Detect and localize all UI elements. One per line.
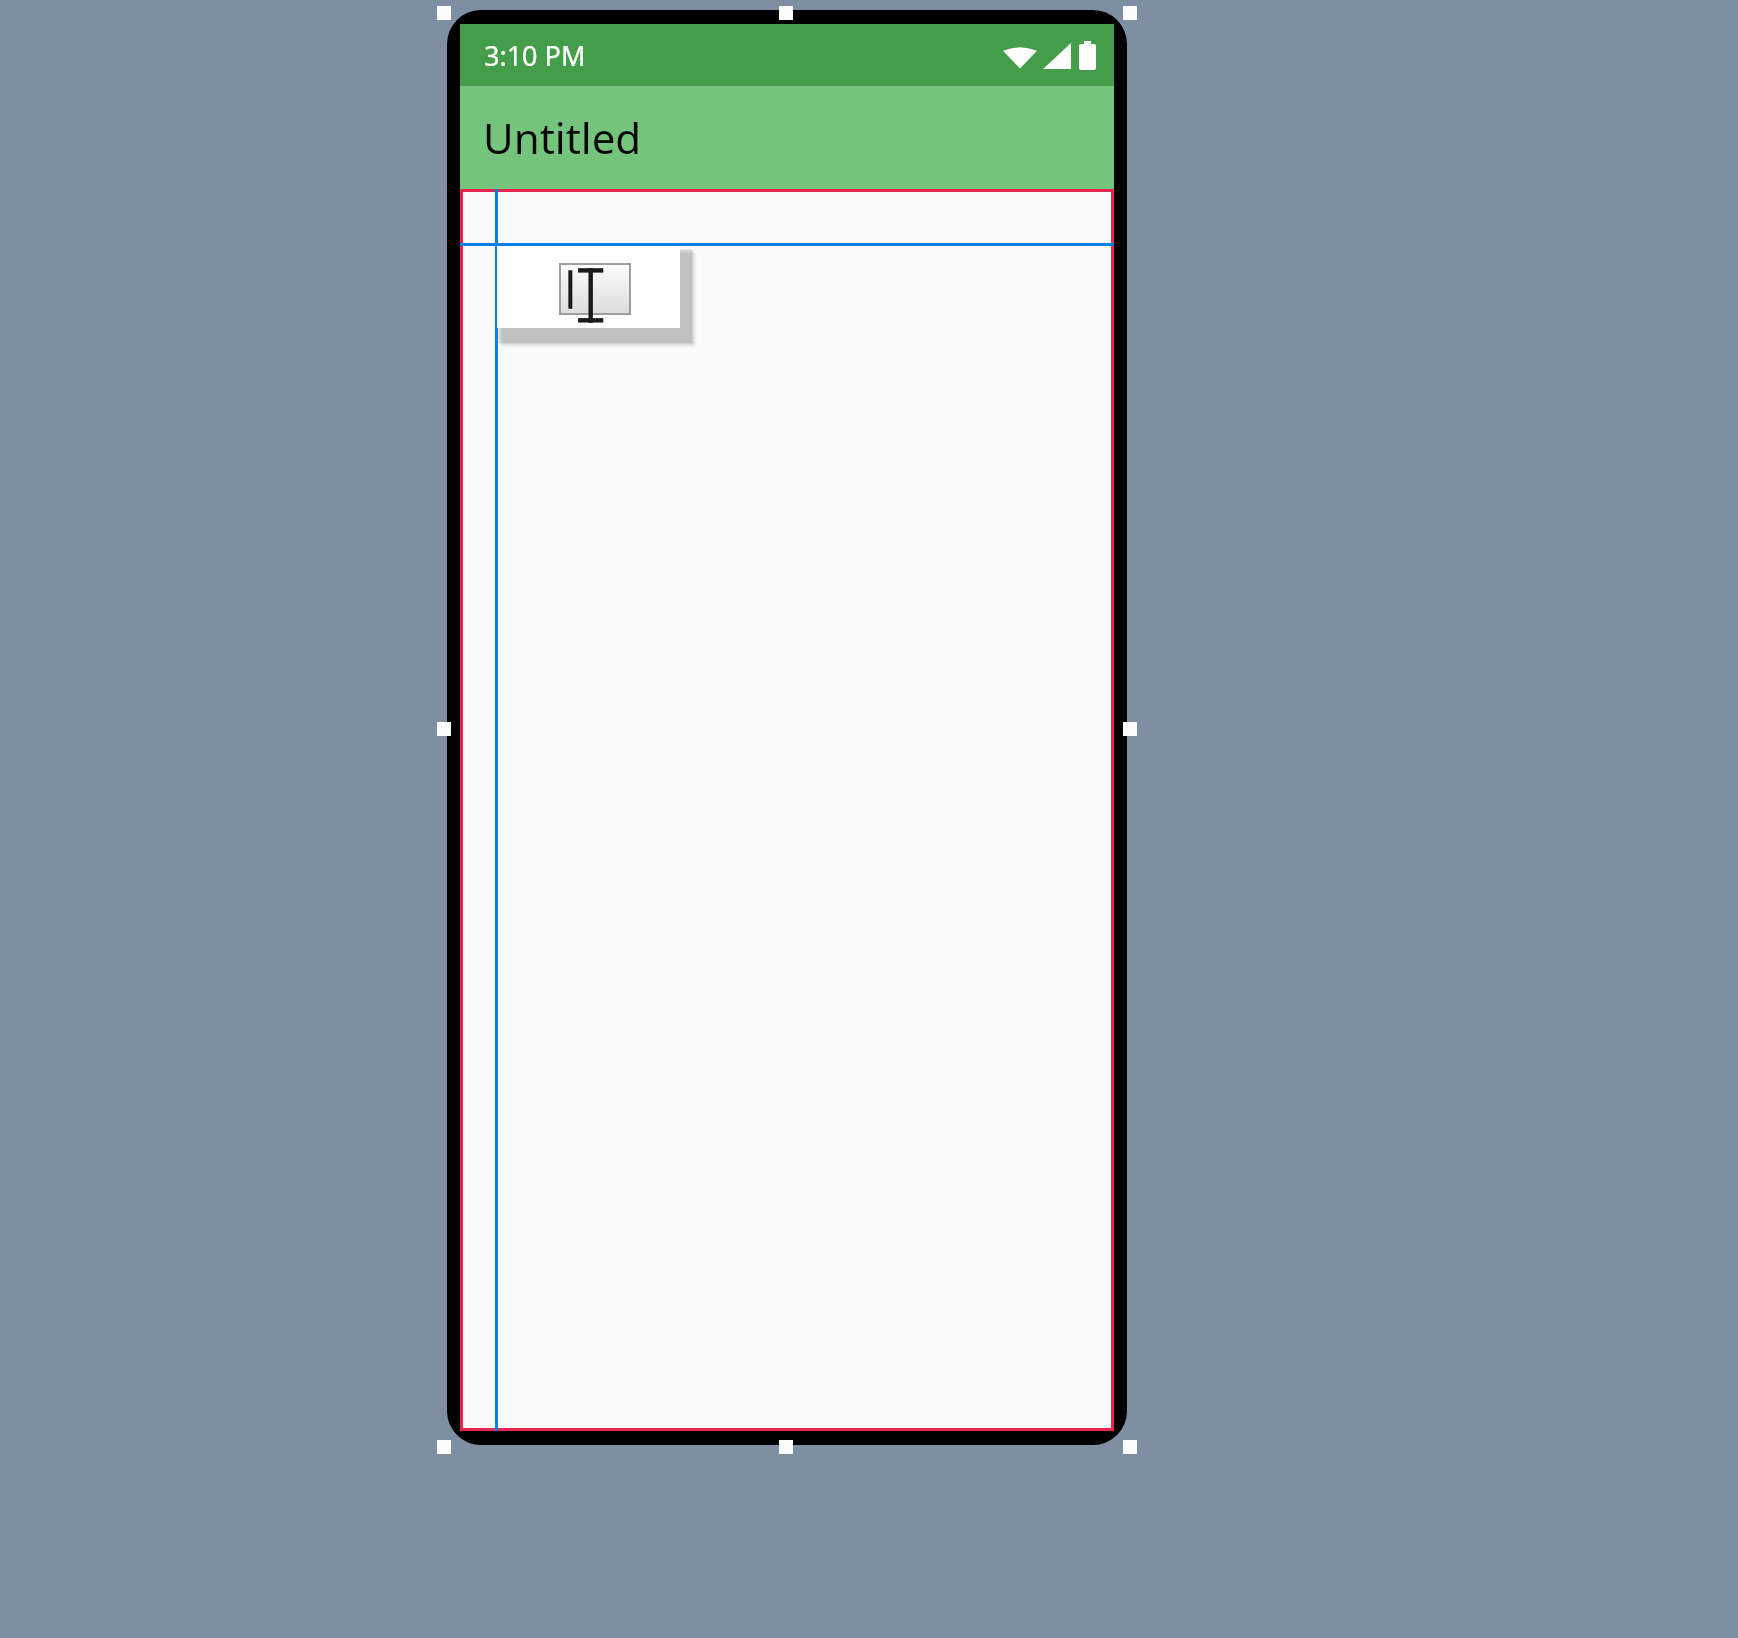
other: Battery (1079, 41, 1096, 70)
button[interactable]: Untitled (460, 86, 1114, 189)
other: Wi-Fi signal (1003, 43, 1037, 69)
staticText: Untitled (483, 109, 642, 166)
button[interactable]: Text field widget (497, 246, 680, 328)
staticText: 3:10 PM (484, 37, 586, 74)
other: Text field widget (559, 263, 631, 315)
other: Cellular signal (1043, 43, 1071, 69)
